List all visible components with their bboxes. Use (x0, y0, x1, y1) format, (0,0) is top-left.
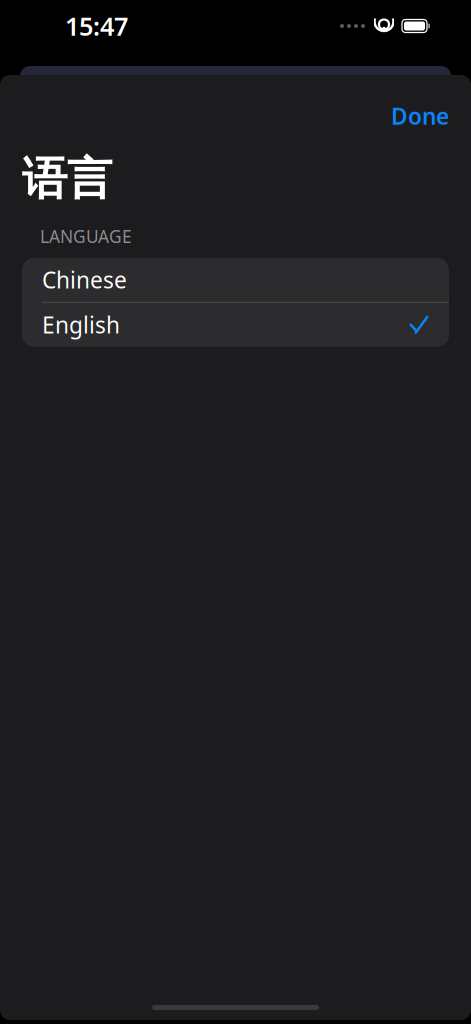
button[interactable]: English (22, 303, 449, 347)
button[interactable]: Chinese (22, 258, 449, 302)
staticText: 语言 (22, 151, 112, 207)
staticText: English (42, 310, 120, 340)
staticText: LANGUAGE (40, 225, 132, 248)
staticText: Chinese (42, 265, 127, 295)
staticText: Done (391, 101, 449, 131)
button[interactable]: Done (387, 93, 453, 139)
staticText: 15:47 (65, 9, 128, 43)
